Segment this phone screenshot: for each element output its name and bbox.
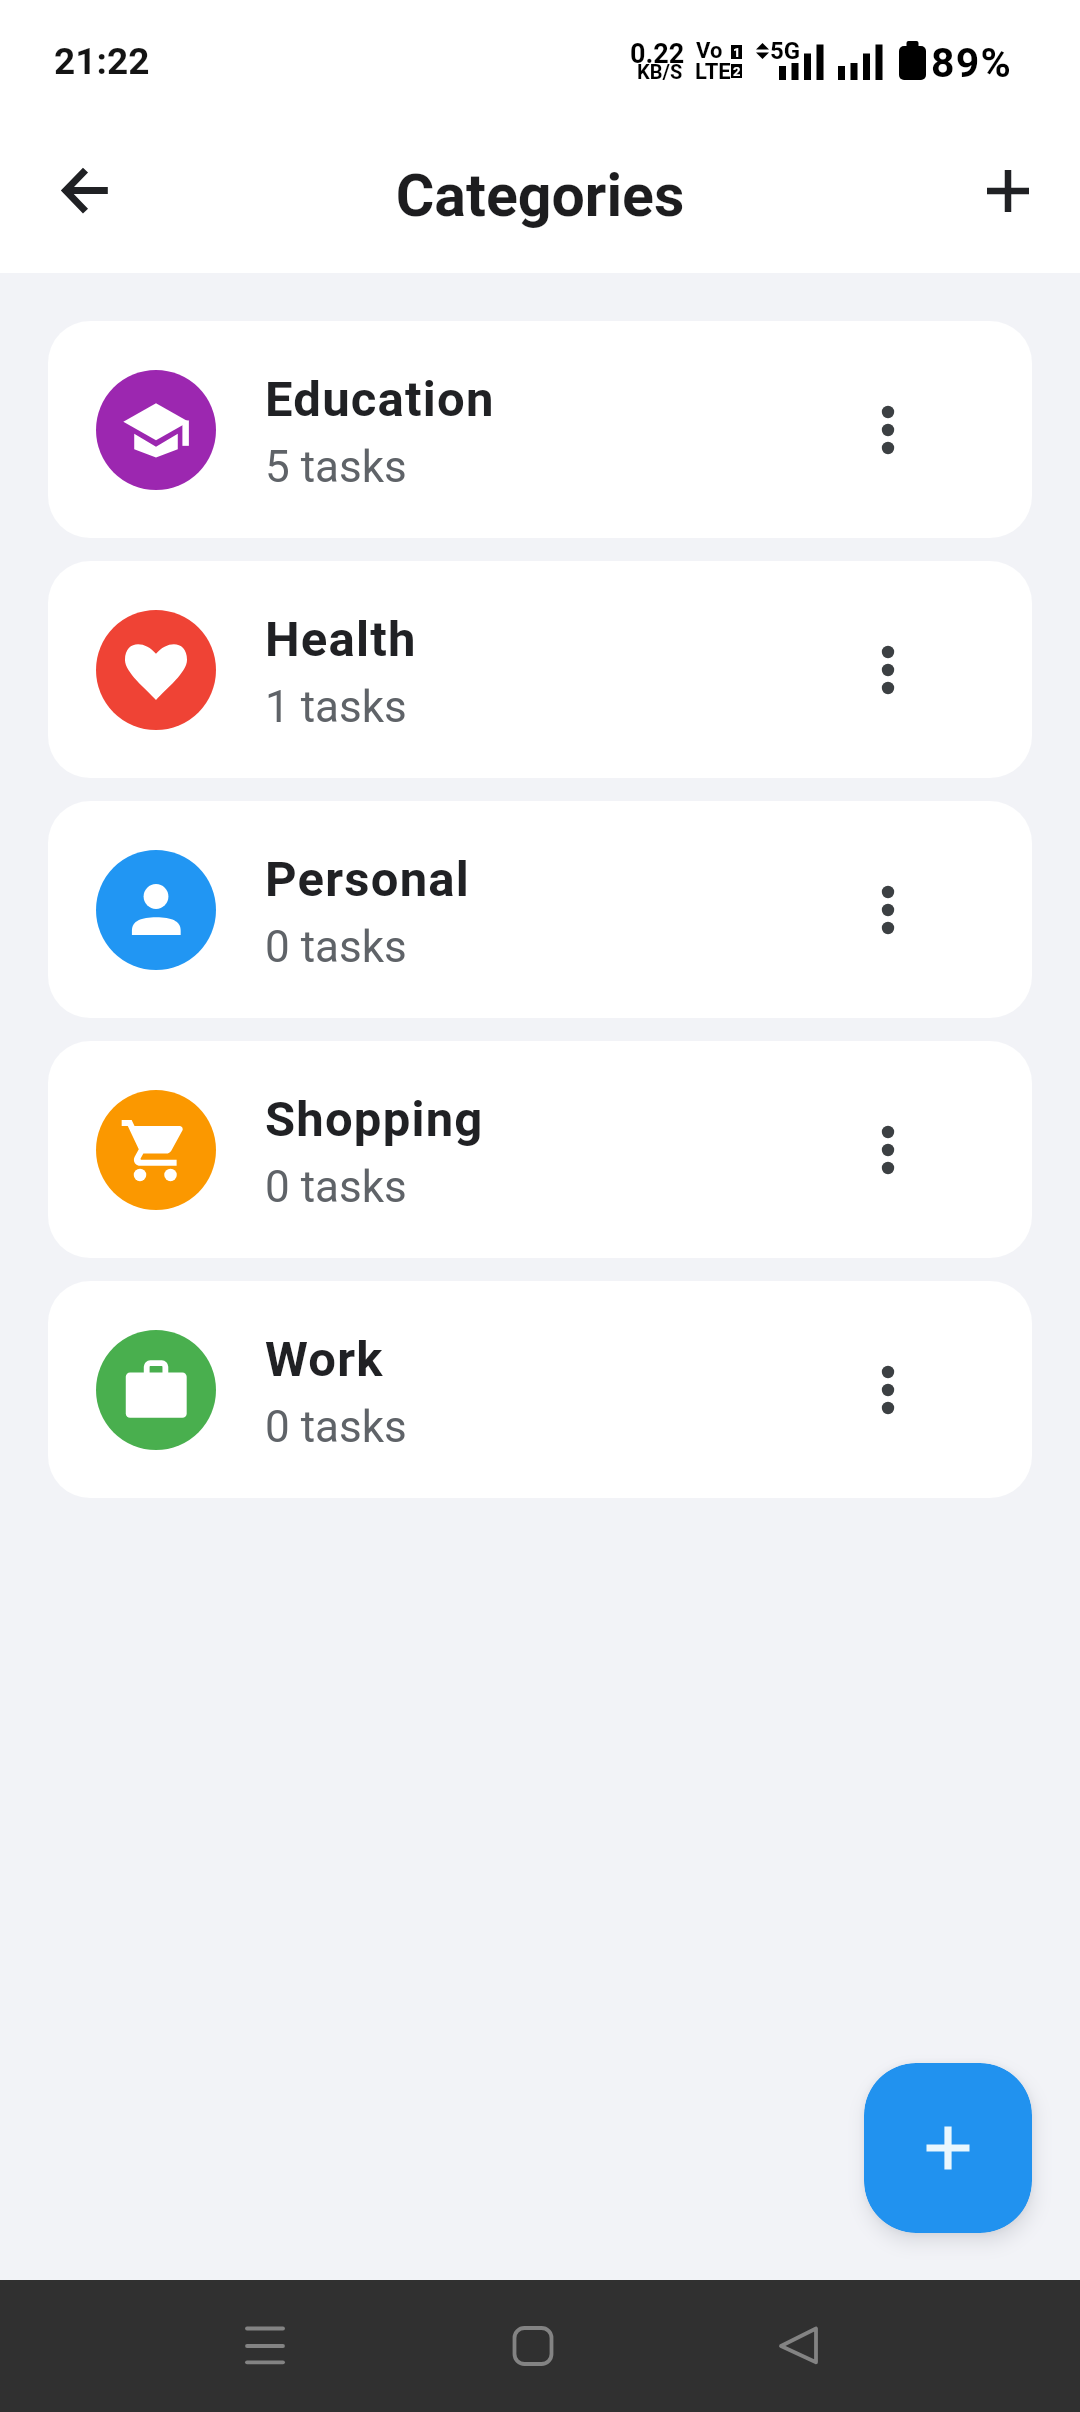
staticText: 0 tasks: [265, 1161, 407, 1213]
button[interactable]: More options: [840, 1342, 936, 1438]
staticText: Work: [265, 1331, 384, 1388]
button[interactable]: Education: [48, 321, 1032, 538]
staticText: Categories: [0, 161, 1080, 230]
button[interactable]: Add: [958, 141, 1058, 241]
button[interactable]: Shopping: [48, 1041, 1032, 1258]
staticText: 1: [733, 45, 741, 59]
staticText: 21:22: [54, 40, 150, 83]
staticText: KB/S: [637, 60, 683, 83]
button[interactable]: More options: [840, 862, 936, 958]
staticText: LTE: [695, 59, 731, 85]
button[interactable]: More options: [840, 622, 936, 718]
staticText: 5G: [770, 37, 801, 65]
staticText: Personal: [265, 851, 470, 908]
staticText: Shopping: [265, 1091, 484, 1148]
staticText: 0 tasks: [265, 921, 407, 973]
staticText: 1 tasks: [265, 681, 407, 733]
button[interactable]: Back: [34, 141, 134, 241]
button[interactable]: Personal: [48, 801, 1032, 1018]
button[interactable]: More options: [840, 382, 936, 478]
staticText: 0.22: [630, 38, 685, 70]
staticText: 2: [733, 64, 741, 78]
staticText: Health: [265, 611, 417, 668]
staticText: 89%: [931, 39, 1012, 87]
button[interactable]: Work: [48, 1281, 1032, 1498]
button[interactable]: More options: [840, 1102, 936, 1198]
staticText: 5 tasks: [265, 441, 407, 493]
staticText: Education: [265, 371, 495, 428]
button[interactable]: Add category: [864, 2063, 1032, 2233]
staticText: 0 tasks: [265, 1401, 407, 1453]
button[interactable]: Health: [48, 561, 1032, 778]
staticText: Vo: [696, 38, 723, 64]
